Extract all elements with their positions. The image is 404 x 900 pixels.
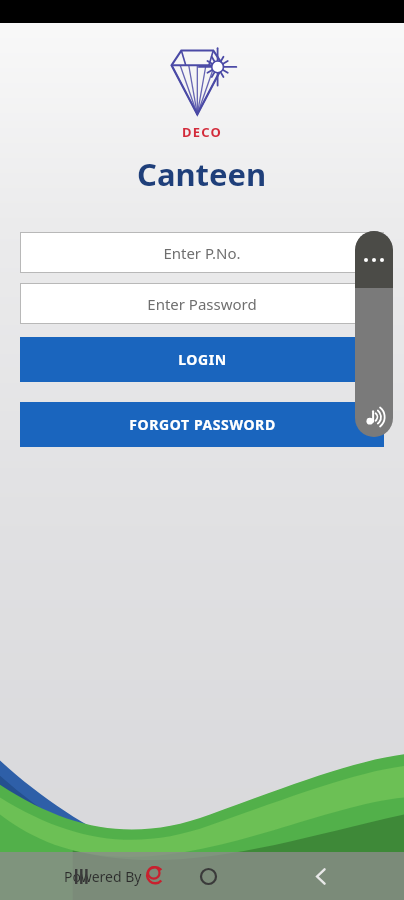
button[interactable]: Enter Password [20,283,384,324]
button[interactable]: Recents [62,856,102,896]
staticText: Powered By [64,867,142,886]
staticText: LOGIN [178,350,227,369]
button[interactable]: Back [300,855,342,897]
staticText: Enter Password [147,294,257,314]
staticText: DECO [182,123,222,141]
button[interactable]: Home [187,855,229,897]
staticText: FORGOT PASSWORD [129,415,276,434]
button[interactable]: LOGIN [20,337,384,382]
button[interactable]: Enter P.No. [20,232,384,273]
button[interactable]: FORGOT PASSWORD [20,402,384,447]
button[interactable]: Assistive overlay [355,231,393,437]
staticText: Enter P.No. [163,243,241,263]
staticText: Canteen [137,153,267,195]
